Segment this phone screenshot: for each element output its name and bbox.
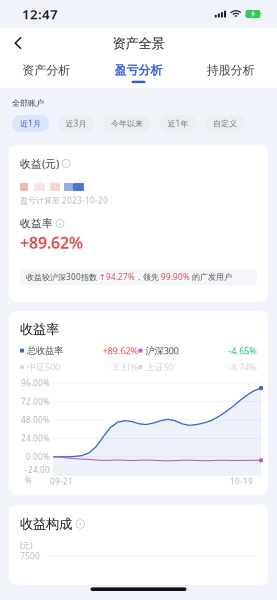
staticText: 99.90% [161,272,190,282]
staticText: 近3月 [65,118,86,129]
staticText: +89.62% [20,232,83,253]
staticText: 24.00% [21,433,50,444]
staticText: 收益较沪深300指数 [26,272,99,282]
button[interactable]: 近1年 [159,115,196,132]
staticText: -4.74% [228,361,257,373]
staticText: 沪深300 [145,344,178,357]
staticText: 今年以来 [111,119,143,128]
staticText: 48.00% [21,415,50,425]
button[interactable]: 自定义 [205,115,245,132]
button[interactable]: 盈亏分析 [92,59,185,88]
staticText: 09-21 [50,476,73,487]
staticText: +89.62% [102,344,138,357]
staticText: 收益构成 [20,516,72,532]
staticText: 10-19 [230,476,253,487]
staticText: 中证500 [27,361,60,373]
staticText: 72.00% [21,396,50,407]
staticText: 资产分析 [22,63,70,78]
staticText: 自定义 [213,119,237,128]
staticText: 持股分析 [207,63,255,78]
staticText: 盈亏计算至 2023-10-20 [20,195,108,206]
staticText: 7500 [20,551,40,561]
staticText: -4.65% [228,344,257,357]
button[interactable]: 今年以来 [103,115,151,132]
staticText: (元) [20,540,32,551]
staticText: 收益(元) [20,156,59,171]
button[interactable]: 近1月 [12,115,49,132]
staticText: 总收益率 [27,345,63,356]
staticText: 上证50 [145,361,173,373]
staticText: 0.00% [26,451,50,462]
staticText: 收益率 [20,217,53,230]
button[interactable]: 近3月 [57,115,94,132]
staticText: -24.00% [25,464,50,486]
staticText: 的广发用户 [190,272,232,282]
staticText: 近1月 [20,118,41,129]
staticText: 96.00% [21,378,50,388]
staticText: ，领先 [135,272,161,282]
staticText: ↑94.27% [99,272,135,282]
staticText: -3.31% [109,361,138,373]
staticText: 12:47 [22,5,58,23]
button[interactable]: Back [0,28,40,58]
staticText: 收益率 [20,321,59,337]
staticText: 盈亏分析 [114,63,162,78]
staticText: 近1年 [167,118,188,129]
staticText: 全部账户 [12,98,44,108]
button[interactable]: 持股分析 [185,59,277,88]
button[interactable]: 资产分析 [0,59,92,88]
staticText: 资产全景 [112,35,164,52]
